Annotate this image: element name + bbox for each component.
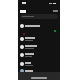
button[interactable]: [20, 14, 58, 19]
button[interactable]: [18, 43, 60, 51]
button[interactable]: [18, 22, 60, 30]
button[interactable]: [18, 60, 60, 68]
button[interactable]: [18, 35, 60, 43]
button[interactable]: [18, 51, 60, 59]
button[interactable]: [18, 67, 60, 75]
